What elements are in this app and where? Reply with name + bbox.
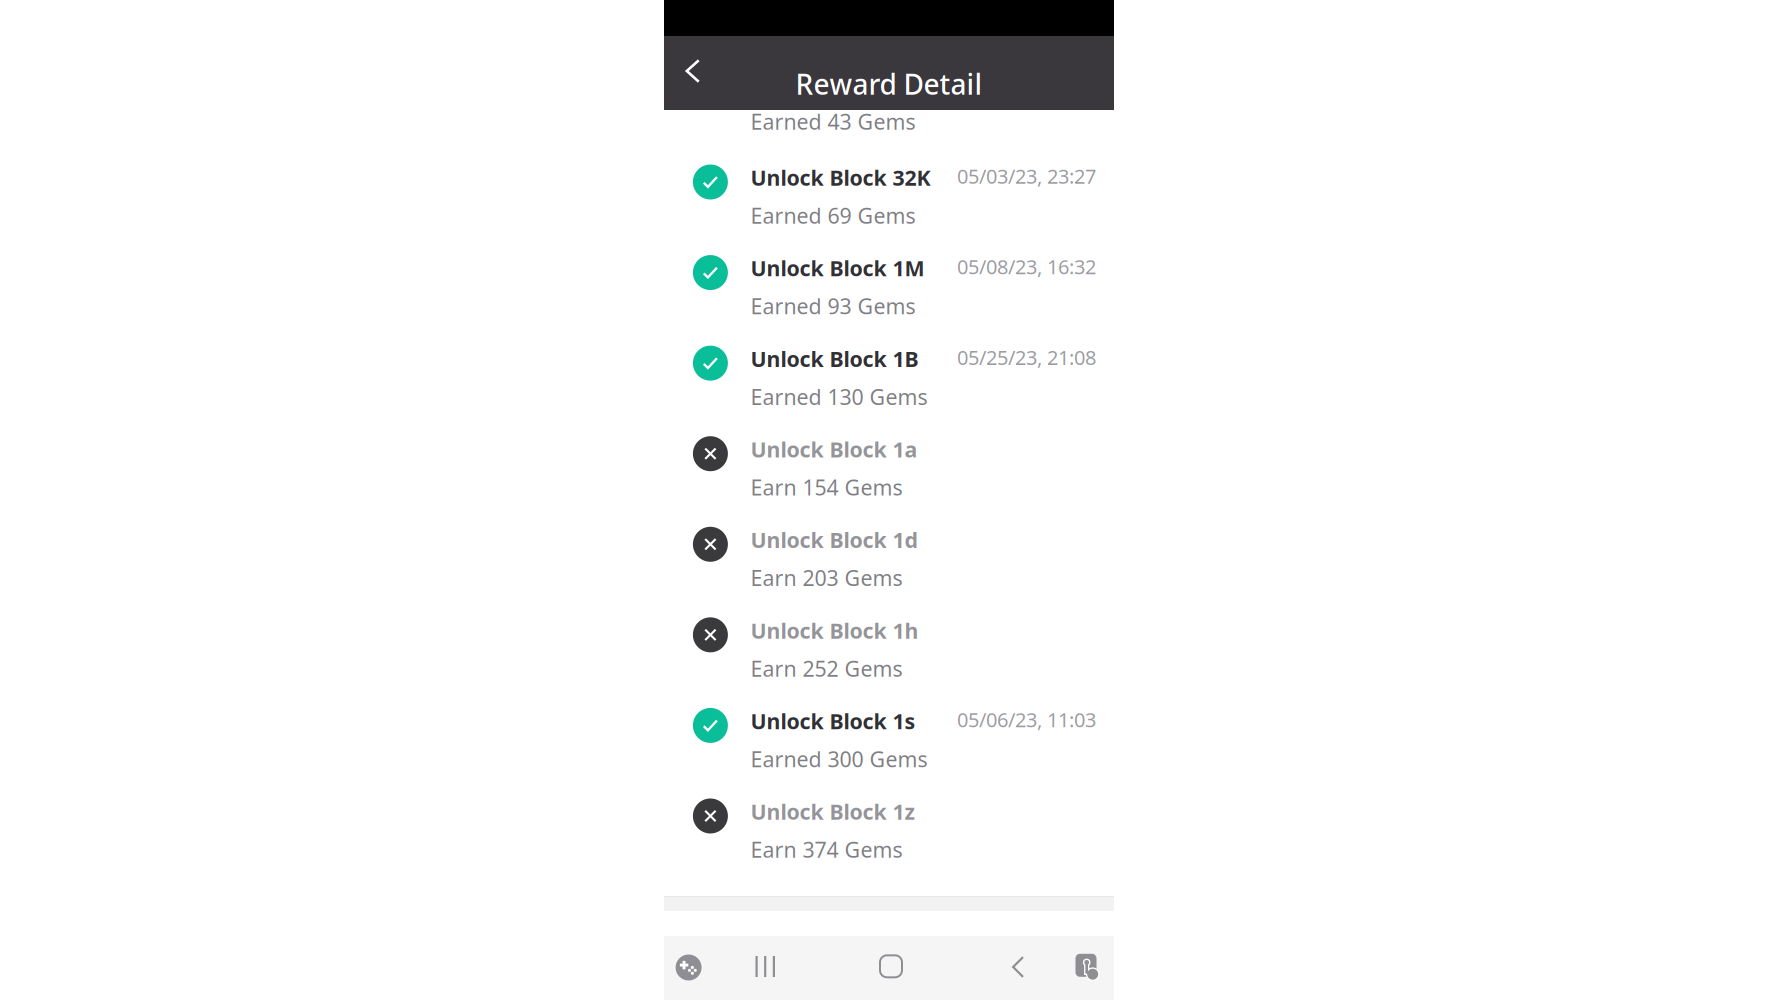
staticText: 05/25/23, 21:08 (957, 344, 1096, 370)
staticText: 05/08/23, 16:32 (957, 253, 1096, 280)
button[interactable]: Unlock Block 1M (664, 253, 1114, 343)
button[interactable]: Unlock Block 1a (664, 434, 1114, 524)
button[interactable]: Screenshot (1061, 936, 1119, 1000)
staticText: Earned 69 Gems (750, 201, 915, 230)
button[interactable]: Unlock Block 1s (664, 705, 1114, 796)
staticText: 05/03/23, 23:27 (957, 163, 1096, 189)
staticText: Unlock Block 1s (750, 707, 915, 735)
staticText: Earned 130 Gems (750, 382, 927, 411)
staticText: Unlock Block 1a (750, 435, 917, 463)
button[interactable]: Unlock Block 1d (664, 524, 1114, 615)
button[interactable]: Back (664, 47, 721, 95)
staticText: Unlock Block 1z (750, 797, 915, 826)
button[interactable]: Unlock Block 1B (664, 343, 1114, 434)
staticText: Reward Detail (795, 65, 982, 103)
staticText: Earned 93 Gems (750, 292, 915, 320)
button[interactable]: Unlock Block 32K (664, 162, 1114, 253)
staticText: Earn 374 Gems (750, 835, 902, 864)
staticText: Earn 252 Gems (750, 654, 902, 682)
staticText: Unlock Block 32K (750, 163, 930, 192)
button[interactable]: Unlock Block 1h (664, 615, 1114, 705)
button[interactable]: Back (983, 934, 1053, 1000)
staticText: Earn 203 Gems (750, 564, 902, 592)
staticText: Unlock Block 1B (750, 344, 918, 373)
staticText: 05/06/23, 11:03 (957, 706, 1096, 733)
staticText: Earned 43 Gems (750, 107, 915, 136)
button[interactable]: Recent apps (730, 933, 800, 999)
staticText: Earn 154 Gems (750, 473, 902, 501)
staticText: Unlock Block 1M (750, 254, 924, 282)
button[interactable]: Unlock Block 1z (664, 796, 1114, 887)
staticText: Unlock Block 1d (750, 526, 917, 554)
staticText: Unlock Block 1h (750, 616, 918, 644)
button[interactable]: Home (856, 933, 926, 999)
staticText: Earned 300 Gems (750, 745, 927, 773)
button[interactable]: Game Booster (660, 934, 718, 1000)
